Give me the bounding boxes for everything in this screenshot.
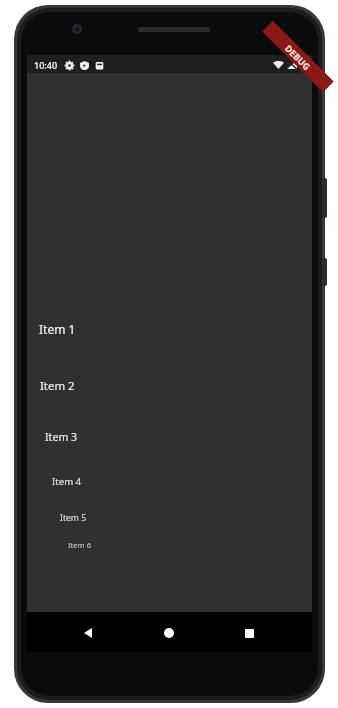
staticText: Item 6 <box>68 540 92 550</box>
staticText: Item 3 <box>45 430 78 444</box>
button[interactable]: Item 1 <box>39 318 159 340</box>
button[interactable]: Item 4 <box>52 473 172 490</box>
button[interactable]: Item 6 <box>68 538 188 552</box>
button[interactable]: Back <box>77 622 99 644</box>
button[interactable]: Item 3 <box>45 427 165 446</box>
button[interactable]: Home <box>158 622 180 644</box>
staticText: Item 2 <box>40 378 75 394</box>
button[interactable]: Item 5 <box>60 510 180 525</box>
staticText: 10:40 <box>34 59 58 71</box>
staticText: Item 4 <box>52 475 82 488</box>
staticText: Item 5 <box>60 512 87 524</box>
button[interactable]: Recent apps <box>238 622 260 644</box>
staticText: DEBUG <box>283 42 313 72</box>
staticText: Item 1 <box>39 321 76 337</box>
button[interactable]: Item 2 <box>40 375 160 396</box>
